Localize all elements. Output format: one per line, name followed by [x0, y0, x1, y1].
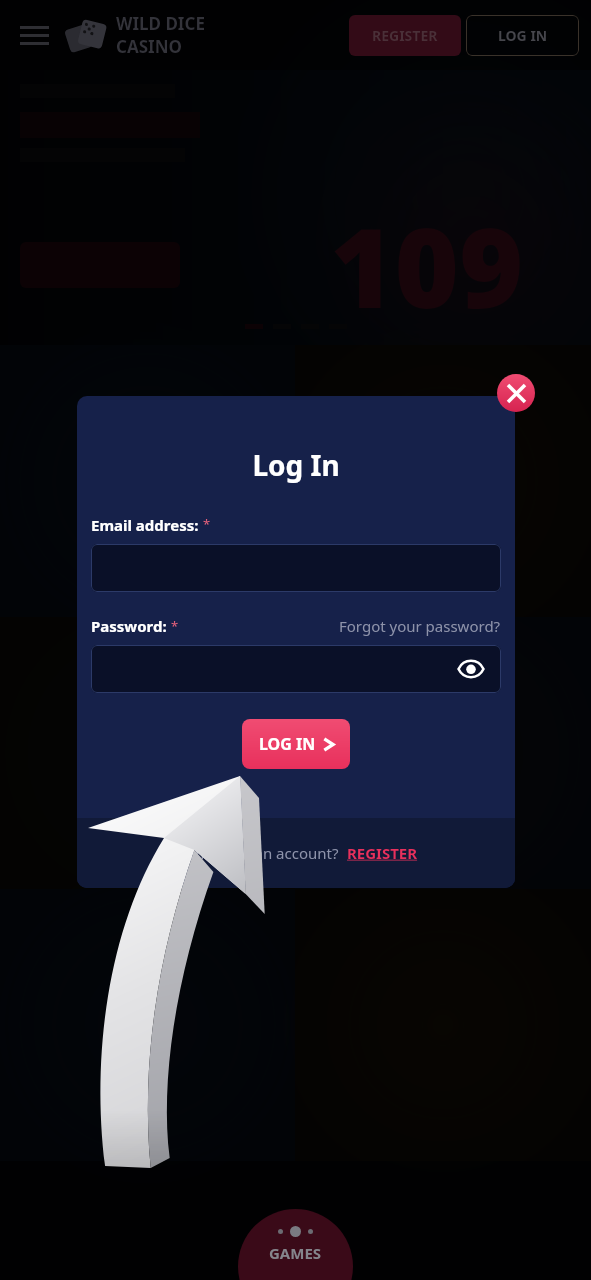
- button[interactable]: [0, 345, 295, 617]
- button[interactable]: LOG IN: [242, 719, 350, 769]
- staticText: WILD DICE: [116, 12, 205, 35]
- button[interactable]: [0, 617, 295, 889]
- button[interactable]: Show password: [455, 653, 487, 685]
- button[interactable]: LOG IN: [466, 15, 579, 56]
- staticText: 109: [330, 190, 524, 340]
- staticText: Email address:: [91, 515, 199, 535]
- button[interactable]: Games: [238, 1209, 353, 1280]
- staticText: CASINO: [116, 35, 182, 58]
- staticText: GAMES: [269, 1243, 322, 1263]
- staticText: LOG IN: [498, 26, 548, 45]
- button[interactable]: Forgot your password?: [339, 616, 501, 636]
- staticText: Password:: [91, 616, 167, 636]
- staticText: LOG IN: [259, 733, 316, 755]
- button[interactable]: Show password: [91, 645, 501, 693]
- button[interactable]: REGISTER: [349, 15, 461, 56]
- button[interactable]: Menu: [12, 13, 56, 57]
- button[interactable]: [91, 544, 501, 592]
- staticText: *: [203, 515, 211, 533]
- staticText: *: [171, 617, 179, 635]
- button[interactable]: REGISTER: [347, 843, 418, 863]
- button[interactable]: [295, 617, 591, 889]
- staticText: Don't have an account?: [175, 843, 339, 863]
- button[interactable]: Close: [497, 374, 535, 412]
- staticText: REGISTER: [372, 26, 438, 45]
- button[interactable]: [0, 889, 295, 1161]
- staticText: Forgot your password?: [339, 616, 501, 636]
- staticText: Log In: [77, 446, 515, 484]
- button[interactable]: [295, 345, 591, 617]
- staticText: REGISTER: [347, 843, 418, 863]
